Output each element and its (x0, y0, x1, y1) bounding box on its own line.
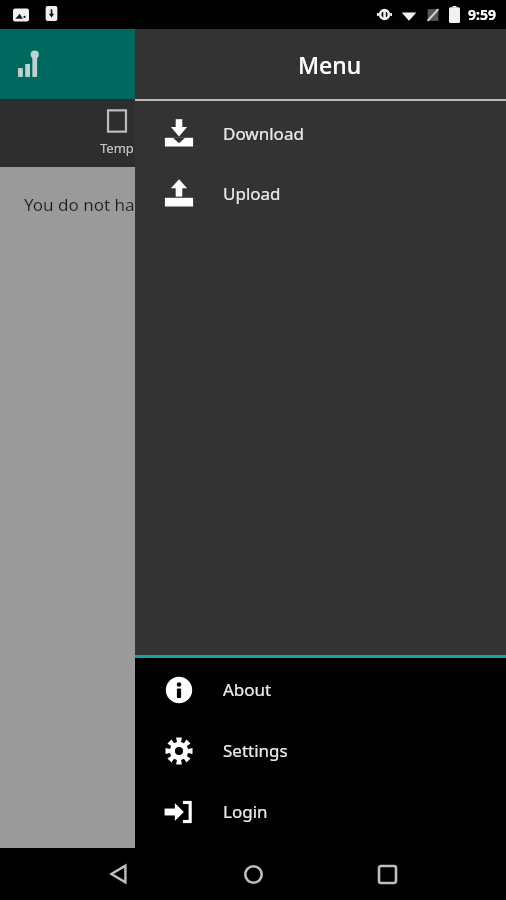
button[interactable]: Settings (135, 720, 506, 781)
staticText: Temp (100, 139, 134, 157)
staticText: Login (223, 800, 268, 823)
staticText: Download (223, 122, 304, 145)
button[interactable]: Open navigation drawer (14, 47, 48, 81)
staticText: Upload (223, 182, 281, 205)
button[interactable]: About (135, 659, 506, 720)
button[interactable]: Temp (100, 107, 134, 157)
button[interactable]: Login (135, 781, 506, 842)
staticText: About (223, 678, 272, 701)
staticText: 9:59 (468, 5, 496, 24)
staticText: You do not have any (24, 193, 186, 216)
button[interactable]: Recent apps (363, 850, 411, 898)
staticText: Menu (298, 49, 362, 80)
button[interactable]: Download (135, 103, 506, 163)
staticText: Settings (223, 739, 288, 762)
button[interactable]: Back (95, 850, 143, 898)
button[interactable]: Upload (135, 163, 506, 223)
button[interactable]: Home (229, 850, 277, 898)
